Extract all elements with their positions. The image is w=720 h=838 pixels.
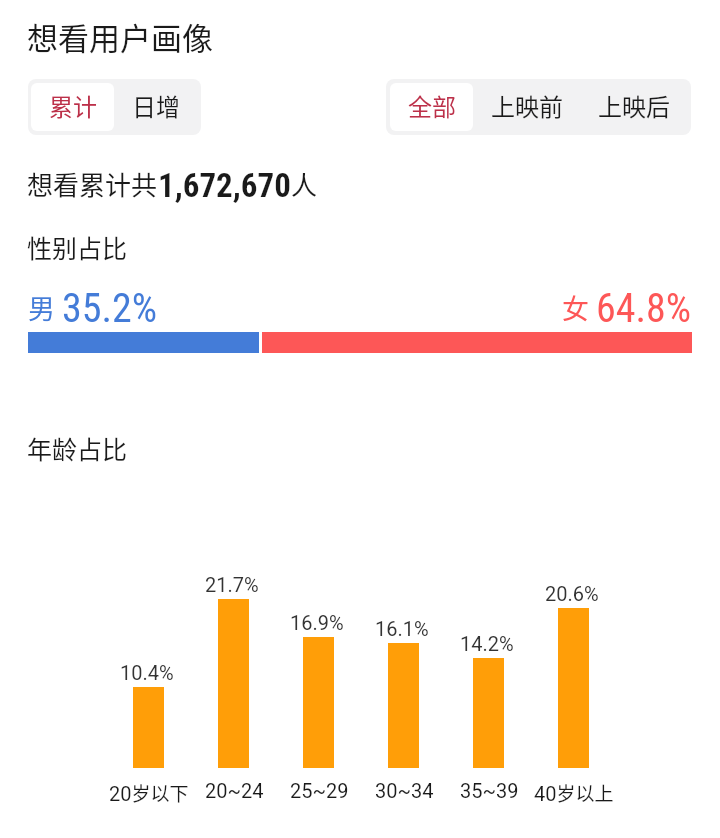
button[interactable]: 上映前 [473, 79, 580, 135]
button[interactable]: 日增 [114, 79, 198, 135]
staticText: 20岁以下 [109, 779, 189, 807]
staticText: 年龄占比 [27, 430, 128, 466]
staticText: 上映前 [491, 88, 563, 123]
staticText: 21.7% [205, 573, 259, 596]
staticText: 64.8% [596, 285, 692, 332]
staticText: 人 [291, 165, 318, 203]
button[interactable]: 全部 [390, 79, 473, 135]
button[interactable]: 累计 [31, 79, 114, 135]
staticText: 14.2% [460, 632, 514, 655]
staticText: 25~29 [290, 779, 349, 802]
staticText: 想看用户画像 [27, 14, 213, 59]
staticText: 35~39 [460, 779, 519, 802]
staticText: 日增 [132, 88, 180, 123]
staticText: 10.4% [120, 661, 174, 684]
staticText: 1,672,670 [158, 166, 291, 205]
staticText: 男 [28, 288, 55, 327]
staticText: 累计 [49, 88, 97, 123]
staticText: 女 [562, 288, 589, 327]
staticText: 16.9% [290, 611, 344, 634]
staticText: 想看累计共 [27, 165, 158, 203]
staticText: 16.1% [375, 617, 429, 640]
staticText: 上映后 [598, 88, 670, 123]
staticText: 全部 [408, 88, 456, 123]
staticText: 20~24 [205, 779, 264, 802]
staticText: 30~34 [375, 779, 434, 802]
staticText: 40岁以上 [534, 779, 614, 807]
button[interactable]: 上映后 [580, 79, 687, 135]
staticText: 性别占比 [27, 229, 128, 265]
staticText: 20.6% [545, 582, 599, 605]
staticText: 35.2% [62, 285, 158, 332]
